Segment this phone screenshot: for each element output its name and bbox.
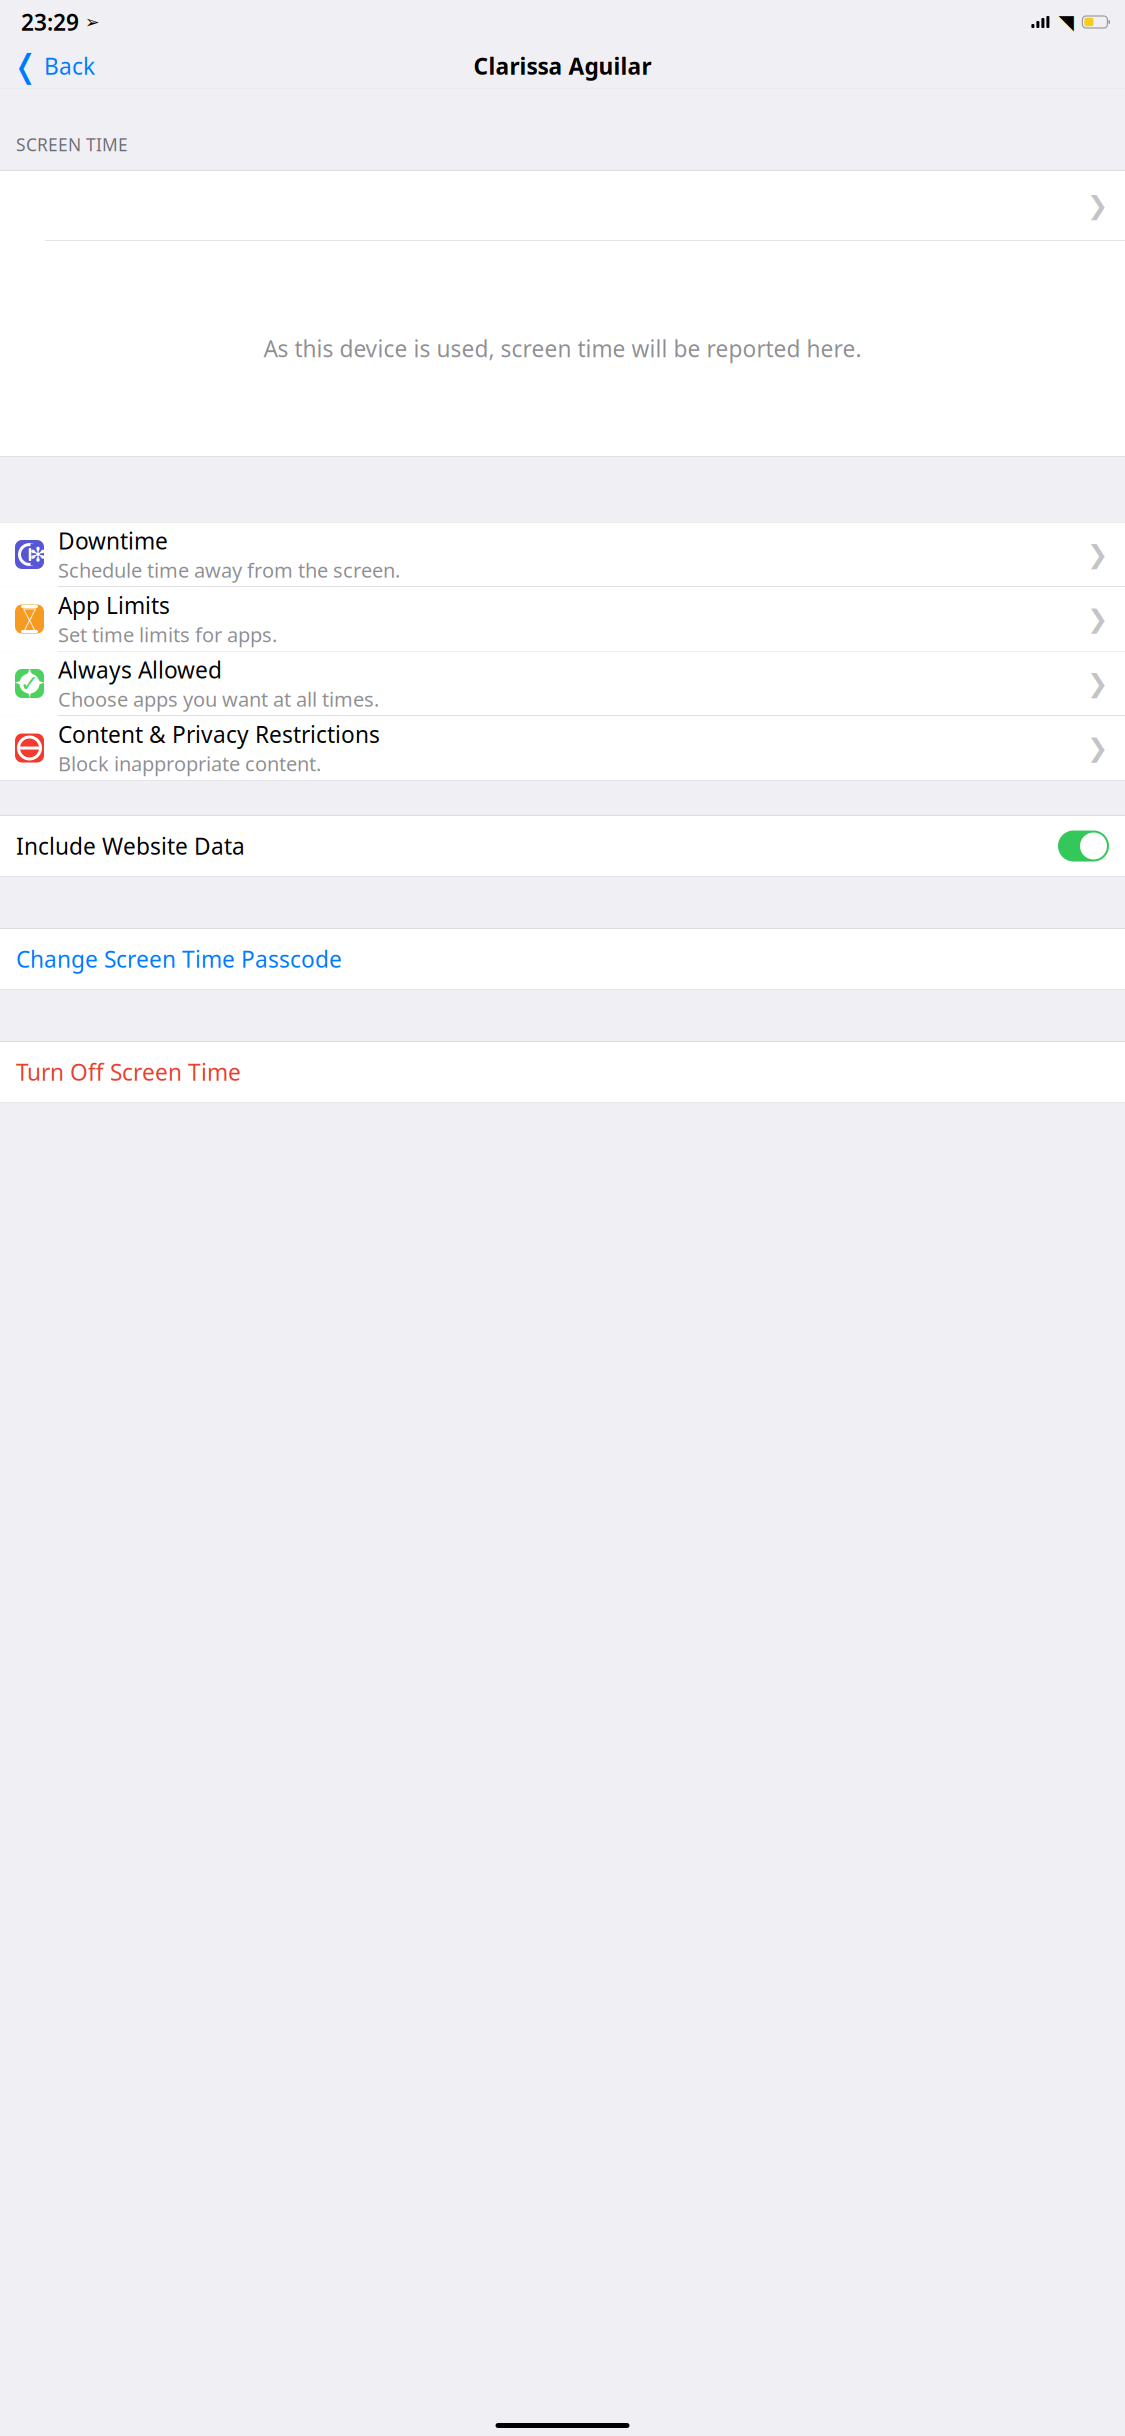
staticText: ❯	[1087, 191, 1108, 220]
staticText: Include Website Data	[16, 831, 245, 861]
staticText: Always Allowed	[58, 655, 222, 685]
staticText: Content & Privacy Restrictions	[58, 719, 380, 749]
staticText: ✻	[29, 543, 46, 566]
button[interactable]: Turn Off Screen Time	[0, 1042, 1125, 1102]
staticText: Back	[44, 51, 95, 81]
staticText: ◥	[1058, 11, 1073, 33]
staticText: ❯	[1087, 669, 1108, 698]
button[interactable]: ✻	[0, 522, 1125, 586]
staticText: ❯	[1087, 540, 1108, 569]
staticText: SCREEN TIME	[16, 133, 128, 156]
staticText: ▽	[23, 604, 36, 623]
staticText: ➢	[79, 12, 100, 32]
button[interactable]: ✦	[0, 651, 1125, 715]
staticText: ❬	[12, 48, 39, 84]
staticText: As this device is used, screen time will…	[263, 333, 861, 363]
staticText: Clarissa Aguilar	[473, 51, 651, 81]
button[interactable]: ❬	[0, 40, 95, 92]
staticText: Turn Off Screen Time	[16, 1057, 241, 1087]
staticText: 23:29	[21, 7, 79, 37]
staticText: △	[23, 615, 36, 634]
staticText: Change Screen Time Passcode	[16, 944, 342, 974]
staticText: ❯	[1087, 605, 1108, 633]
staticText: ✓	[20, 671, 39, 696]
staticText: Downtime	[58, 526, 168, 556]
button[interactable]: Change Screen Time Passcode	[0, 929, 1125, 989]
button[interactable]: Include Website Data	[0, 816, 1125, 876]
staticText: App Limits	[58, 590, 170, 620]
staticText: Set time limits for apps.	[58, 621, 277, 648]
staticText: ✦	[10, 658, 48, 709]
button[interactable]: Content & Privacy Restrictions	[0, 716, 1125, 780]
staticText: Choose apps you want at all times.	[58, 686, 379, 712]
staticText: Block inappropriate content.	[58, 750, 321, 777]
staticText: ❯	[1087, 734, 1108, 762]
button[interactable]: ▽	[0, 587, 1125, 651]
staticText: Schedule time away from the screen.	[58, 557, 400, 583]
